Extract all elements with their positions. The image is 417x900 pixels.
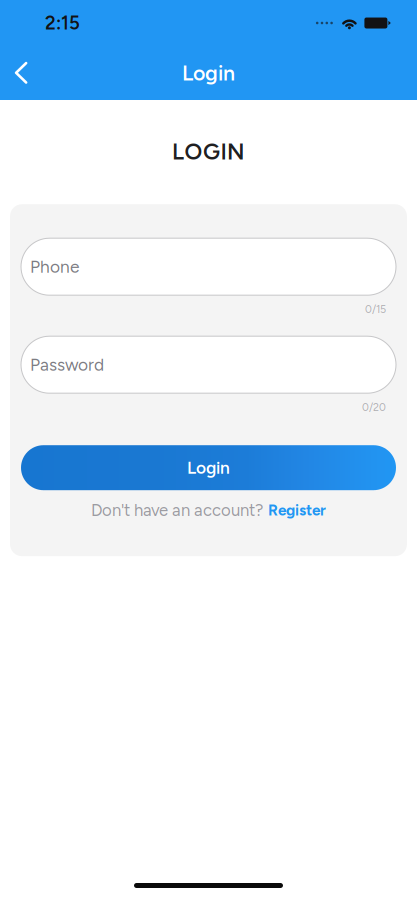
- staticText: 2:15: [45, 12, 80, 34]
- button[interactable]: Login: [21, 445, 396, 490]
- button[interactable]: Back: [0, 51, 43, 95]
- button[interactable]: Don't have an account?: [21, 502, 396, 518]
- staticText: 0/15: [365, 303, 386, 316]
- staticText: Password: [30, 354, 104, 375]
- staticText: Register: [268, 501, 326, 519]
- staticText: Phone: [30, 256, 79, 277]
- staticText: 0/20: [362, 401, 386, 414]
- staticText: LOGIN: [172, 138, 245, 165]
- staticText: Login: [187, 457, 230, 478]
- staticText: Login: [182, 60, 235, 86]
- staticText: Don't have an account?: [91, 500, 263, 520]
